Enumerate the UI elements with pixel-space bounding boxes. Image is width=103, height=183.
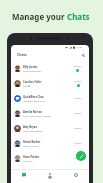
staticText: QuickBites Chat [23,95,44,99]
button[interactable]: Hope Nelson [11,166,89,181]
staticText: Hope Nelson [23,170,40,174]
button[interactable]: QuickBites Chat [11,91,89,106]
button[interactable]: Amy Bryan [11,121,89,136]
staticText: Billy Jacobs [23,65,38,69]
staticText: Really? I love it [23,145,39,148]
button[interactable]: Billy Jacobs [11,61,89,76]
staticText: Thanks! [23,175,32,178]
staticText: 1:32PM [74,97,82,100]
button[interactable]: Caroline Fuller [11,76,89,91]
button[interactable]: Hana Patton [11,151,89,166]
staticText: 12:46 [76,46,82,49]
button[interactable]: Shane Barber [11,136,89,151]
staticText: Hana Patton [23,155,40,159]
staticText: 2:05PM [74,112,82,115]
staticText: 4:18PM [74,142,82,145]
staticText: Chats [67,11,90,22]
staticText: What about you? [23,70,42,73]
button[interactable]: Contacts [37,168,63,182]
staticText: 5:02PM [74,157,82,160]
staticText: Sure pal! [23,160,33,163]
staticText: Hey 😀 [23,85,31,88]
staticText: 12:51PM [73,65,82,68]
button[interactable]: Amelia Norton [11,106,89,121]
staticText: 1:07PM [74,80,82,83]
staticText: Chats [17,52,27,57]
button[interactable]: Chats [11,168,37,182]
staticText: Amelia Norton [23,110,42,114]
staticText: 5:40PM [74,172,82,175]
button[interactable]: New chat [76,151,86,161]
staticText: 3:42PM [74,127,82,130]
staticText: Hey guys, what's up? [23,100,46,103]
staticText: Video attachment [23,130,43,133]
staticText: Shane Barber [23,140,41,144]
staticText: Manage your [12,11,67,22]
button[interactable]: Settings [63,168,89,182]
button[interactable]: Search [80,52,86,58]
staticText: Amy Bryan [23,125,38,129]
staticText: Caroline Fuller [23,80,42,84]
staticText: Sure. I'll be there. Thanks [23,115,51,118]
